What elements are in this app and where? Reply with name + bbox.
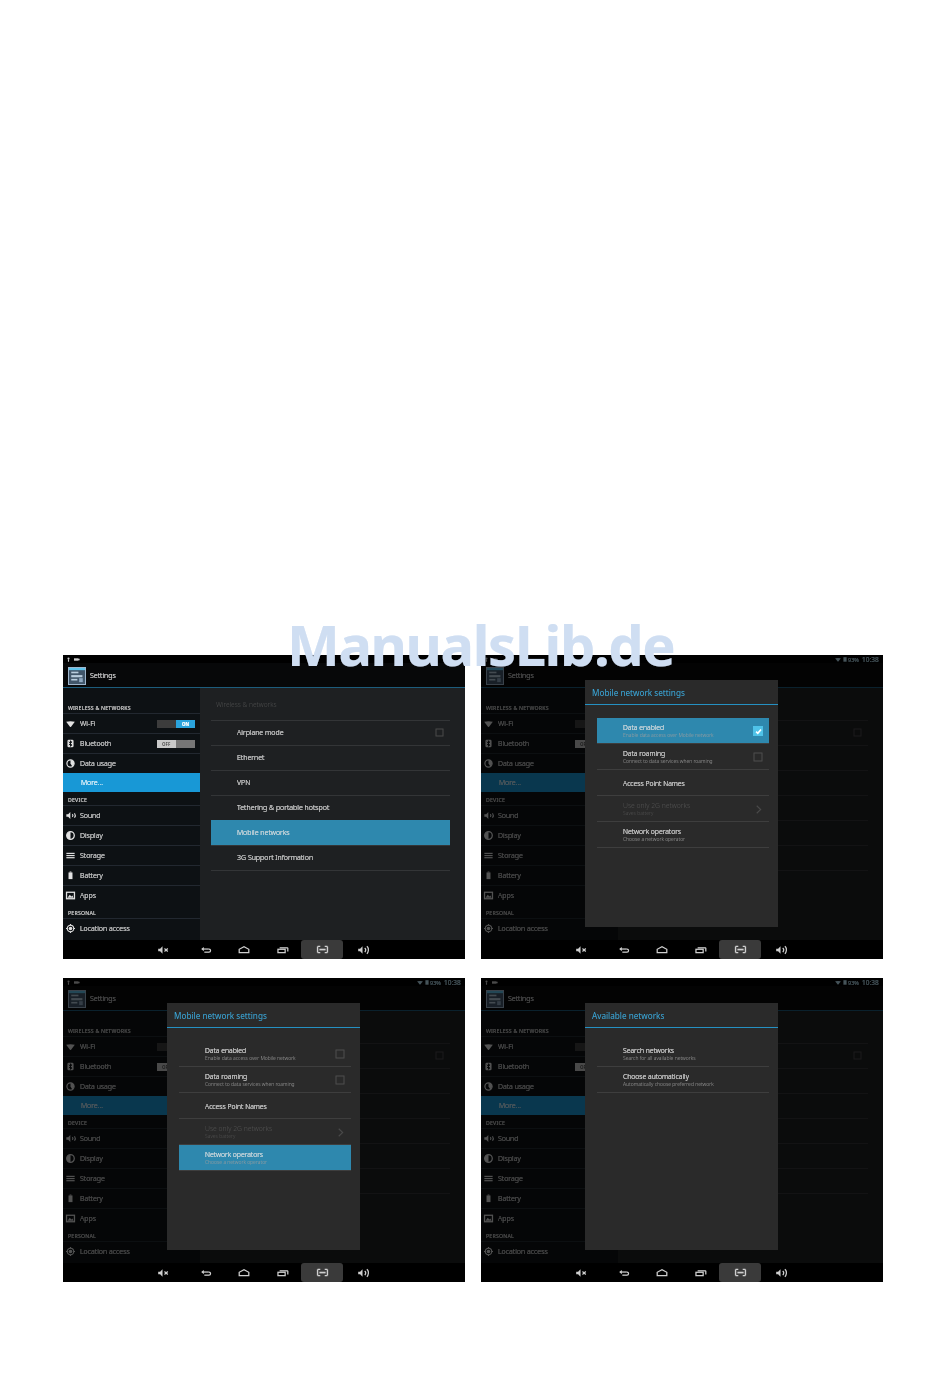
button[interactable]: 3G Support Information [200, 845, 465, 870]
button[interactable]: Tethering & portable hotspot [618, 795, 883, 820]
button[interactable]: Ethernet [618, 745, 883, 770]
button[interactable]: Screenshot [719, 1263, 761, 1282]
button[interactable]: Tethering & portable hotspot [200, 1118, 465, 1143]
button[interactable]: Use only 2G networks [585, 796, 778, 822]
button[interactable]: Volume down [568, 1263, 594, 1282]
button[interactable]: More... [481, 773, 618, 792]
button[interactable]: Display [63, 1149, 200, 1168]
button[interactable]: Data usage [481, 1077, 618, 1096]
button[interactable]: Mobile networks [200, 820, 465, 845]
button[interactable]: VPN [618, 770, 883, 795]
button[interactable]: Volume up [350, 940, 376, 959]
button[interactable]: Screenshot [301, 940, 343, 959]
button[interactable]: Location access [481, 1242, 618, 1261]
button[interactable]: Mobile networks [618, 820, 883, 845]
button[interactable]: Apps [481, 1209, 618, 1228]
button[interactable]: Data roaming [585, 744, 778, 770]
button[interactable]: Recent apps [270, 1263, 296, 1282]
button[interactable]: 3G Support Information [618, 845, 883, 870]
button[interactable]: VPN [200, 1093, 465, 1118]
button[interactable]: 3G Support Information [200, 1168, 465, 1193]
button[interactable]: Wi-Fi [481, 714, 618, 733]
button[interactable]: Access Point Names [167, 1093, 360, 1119]
button[interactable]: Data enabled [585, 718, 778, 744]
button[interactable]: Search networks [585, 1041, 778, 1067]
button[interactable]: Volume down [150, 1263, 176, 1282]
button[interactable]: Screenshot [301, 1263, 343, 1282]
button[interactable]: Apps [63, 886, 200, 905]
button[interactable]: Sound [63, 806, 200, 825]
button[interactable]: Location access [63, 1242, 200, 1261]
button[interactable]: Wi-Fi [63, 1037, 200, 1056]
button[interactable]: Mobile networks [200, 1143, 465, 1168]
button[interactable]: Sound [481, 1129, 618, 1148]
button[interactable]: Data roaming [167, 1067, 360, 1093]
button[interactable]: Back [193, 940, 219, 959]
button[interactable]: Volume up [768, 1263, 794, 1282]
button[interactable]: Network operators [585, 822, 778, 848]
button[interactable]: Display [63, 826, 200, 845]
button[interactable]: Ethernet [618, 1068, 883, 1093]
button[interactable]: Display [481, 1149, 618, 1168]
button[interactable]: Recent apps [688, 940, 714, 959]
button[interactable]: Back [193, 1263, 219, 1282]
button[interactable]: Settings, navigate up [63, 663, 116, 688]
button[interactable]: Storage [481, 1169, 618, 1188]
button[interactable]: Recent apps [688, 1263, 714, 1282]
button[interactable]: Storage [63, 1169, 200, 1188]
button[interactable]: Tethering & portable hotspot [200, 795, 465, 820]
button[interactable]: More... [63, 1096, 200, 1115]
button[interactable]: Airplane mode [200, 720, 465, 745]
button[interactable]: Home [649, 940, 675, 959]
button[interactable]: Back [611, 1263, 637, 1282]
button[interactable]: Wi-Fi [481, 1037, 618, 1056]
button[interactable]: Location access [481, 919, 618, 938]
button[interactable]: Wi-Fi [63, 714, 200, 733]
button[interactable]: Ethernet [200, 1068, 465, 1093]
button[interactable]: Home [231, 940, 257, 959]
button[interactable]: VPN [618, 1093, 883, 1118]
button[interactable]: Volume up [350, 1263, 376, 1282]
button[interactable]: More... [481, 1096, 618, 1115]
button[interactable]: Apps [481, 886, 618, 905]
button[interactable]: Bluetooth [63, 1057, 200, 1076]
button[interactable]: Choose automatically [585, 1067, 778, 1093]
button[interactable]: Back [611, 940, 637, 959]
button[interactable]: Use only 2G networks [167, 1119, 360, 1145]
button[interactable]: Apps [63, 1209, 200, 1228]
button[interactable]: Sound [481, 806, 618, 825]
button[interactable]: Airplane mode [618, 720, 883, 745]
button[interactable]: Bluetooth [481, 734, 618, 753]
button[interactable]: Storage [63, 846, 200, 865]
button[interactable]: Location access [63, 919, 200, 938]
button[interactable]: Recent apps [270, 940, 296, 959]
button[interactable]: Network operators [167, 1145, 360, 1171]
button[interactable]: Battery [63, 866, 200, 885]
button[interactable]: Settings, navigate up [63, 986, 116, 1011]
button[interactable]: Screenshot [719, 940, 761, 959]
button[interactable]: Sound [63, 1129, 200, 1148]
button[interactable]: Storage [481, 846, 618, 865]
button[interactable]: Bluetooth [481, 1057, 618, 1076]
button[interactable]: VPN [200, 770, 465, 795]
button[interactable]: Tethering & portable hotspot [618, 1118, 883, 1143]
button[interactable]: Battery [481, 866, 618, 885]
button[interactable]: Display [481, 826, 618, 845]
button[interactable]: Battery [481, 1189, 618, 1208]
button[interactable]: More... [63, 773, 200, 792]
button[interactable]: Data usage [63, 1077, 200, 1096]
button[interactable]: Airplane mode [618, 1043, 883, 1068]
button[interactable]: Data usage [63, 754, 200, 773]
button[interactable]: Data enabled [167, 1041, 360, 1067]
button[interactable]: Volume up [768, 940, 794, 959]
button[interactable]: Battery [63, 1189, 200, 1208]
button[interactable]: Volume down [150, 940, 176, 959]
button[interactable]: Ethernet [200, 745, 465, 770]
button[interactable]: Airplane mode [200, 1043, 465, 1068]
button[interactable]: Home [649, 1263, 675, 1282]
button[interactable]: Settings, navigate up [481, 663, 534, 688]
button[interactable]: Access Point Names [585, 770, 778, 796]
button[interactable]: Volume down [568, 940, 594, 959]
button[interactable]: Bluetooth [63, 734, 200, 753]
button[interactable]: 3G Support Information [618, 1168, 883, 1193]
